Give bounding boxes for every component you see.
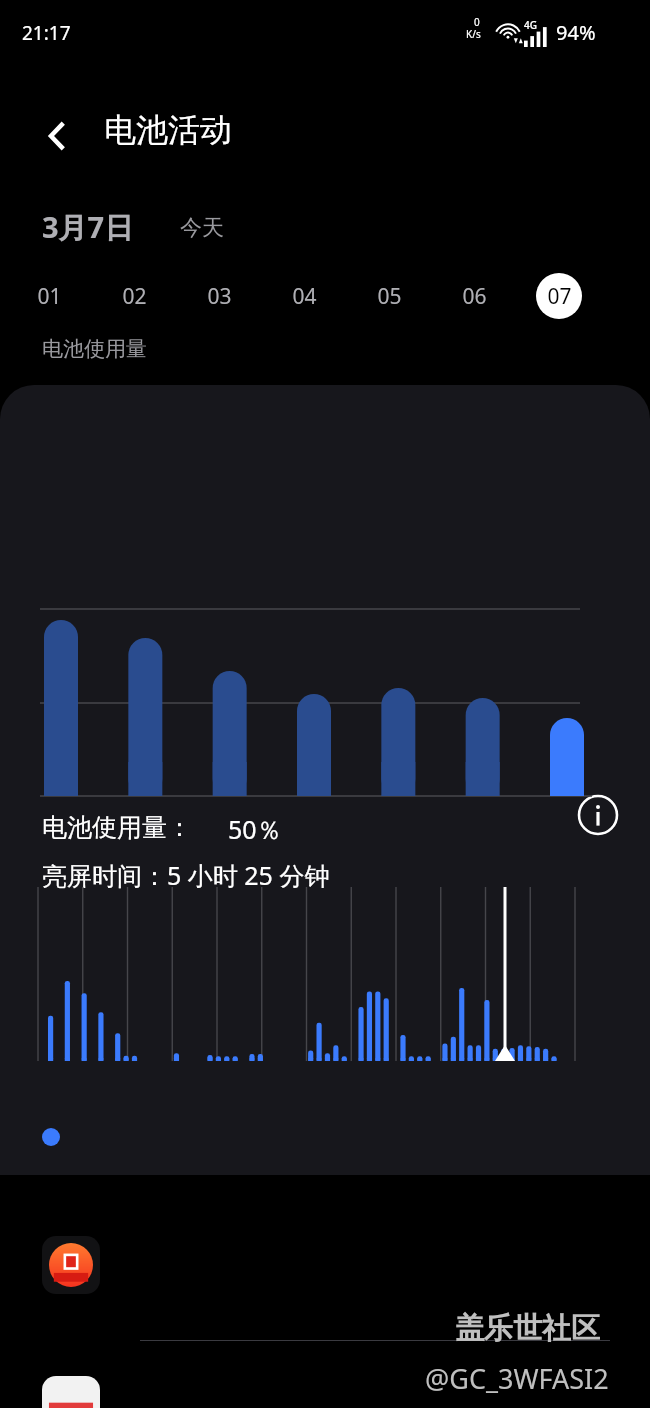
button[interactable]: 06 bbox=[451, 273, 497, 319]
button[interactable]: 淘宝 bbox=[0, 1205, 650, 1340]
staticText: 电池使用量 bbox=[42, 336, 147, 362]
staticText: 06 bbox=[462, 282, 487, 311]
button[interactable]: Back bbox=[28, 108, 84, 164]
button[interactable]: 05 bbox=[366, 273, 412, 319]
button[interactable]: Information bbox=[577, 794, 619, 836]
staticText: 3月7日 bbox=[42, 207, 134, 247]
staticText: 04 bbox=[292, 282, 317, 311]
staticText: 01 bbox=[37, 282, 62, 311]
staticText: 亮屏时间：5 小时 25 分钟 bbox=[42, 858, 330, 892]
staticText: 03 bbox=[207, 282, 232, 311]
button[interactable]: 07 bbox=[536, 273, 582, 319]
staticText: 21:17 bbox=[22, 20, 71, 46]
staticText: K/s bbox=[466, 27, 481, 41]
staticText: 94% bbox=[556, 19, 596, 46]
button[interactable]: 今日头条极速版 bbox=[0, 1348, 650, 1408]
staticText: 07 bbox=[547, 282, 572, 311]
staticText: 50％ bbox=[228, 812, 282, 846]
button[interactable]: 01 bbox=[26, 273, 72, 319]
staticText: 05 bbox=[377, 282, 402, 311]
staticText: 02 bbox=[122, 282, 147, 311]
staticText: 电池使用量： bbox=[42, 812, 192, 843]
staticText: 4G bbox=[524, 18, 537, 32]
button[interactable]: 04 bbox=[281, 273, 327, 319]
button[interactable]: 02 bbox=[111, 273, 157, 319]
staticText: 今天 bbox=[180, 214, 224, 242]
staticText: 盖乐世社区 bbox=[455, 1310, 600, 1347]
staticText: @GC_3WFASI2 bbox=[425, 1360, 609, 1397]
staticText: 0 bbox=[474, 15, 480, 29]
button[interactable]: 03 bbox=[196, 273, 242, 319]
staticText: 电池活动 bbox=[104, 110, 232, 150]
